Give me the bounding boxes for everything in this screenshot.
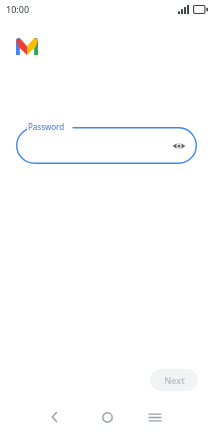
button[interactable]: Show password	[16, 127, 197, 164]
button[interactable]: Back	[43, 405, 67, 429]
button[interactable]: Home	[95, 405, 119, 429]
button[interactable]: Show password	[170, 137, 188, 155]
staticText: 10:00	[6, 3, 30, 15]
staticText: Next	[164, 374, 185, 386]
button[interactable]: Next	[150, 369, 198, 391]
button[interactable]: Recent apps	[143, 405, 167, 429]
staticText: Password	[28, 121, 65, 132]
